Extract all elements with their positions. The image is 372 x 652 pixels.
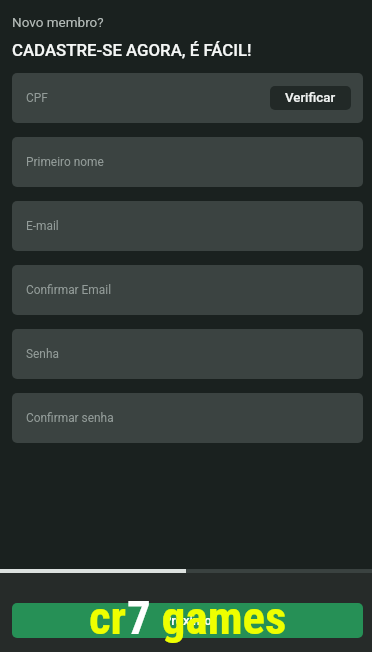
button[interactable]: Primeiro nome [12, 137, 363, 187]
staticText: Novo membro? [12, 14, 104, 30]
staticText: E-mail [26, 219, 59, 233]
staticText: Senha [26, 347, 59, 361]
staticText: CPF [26, 91, 48, 105]
staticText: 7 [127, 590, 151, 645]
button[interactable]: Próximo [12, 603, 363, 638]
button[interactable]: Senha [12, 329, 363, 379]
staticText: Verificar [285, 90, 336, 106]
staticText: cr [89, 590, 127, 645]
button[interactable]: E-mail [12, 201, 363, 251]
button[interactable]: Confirmar senha [12, 393, 363, 443]
staticText: Próximo [163, 613, 212, 628]
button[interactable]: CPF [12, 73, 363, 123]
staticText: Primeiro nome [26, 155, 104, 169]
staticText: games [151, 590, 287, 645]
button[interactable]: Verificar [270, 86, 351, 110]
staticText: CADASTRE-SE AGORA, É FÁCIL! [12, 40, 252, 60]
staticText: Confirmar senha [26, 411, 114, 425]
staticText: Confirmar Email [26, 283, 112, 297]
button[interactable]: Confirmar Email [12, 265, 363, 315]
